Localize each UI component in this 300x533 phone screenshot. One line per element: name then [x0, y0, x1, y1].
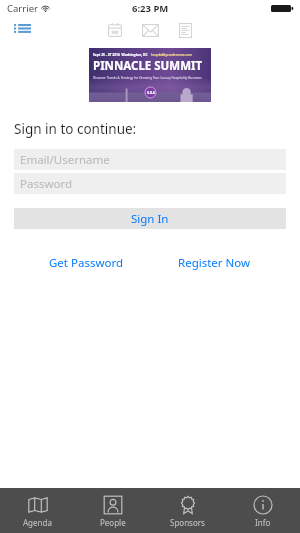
staticText: hospitalityconference.com: [151, 52, 192, 56]
button[interactable]: Pinnacle Summit 2016 banner: [89, 48, 211, 102]
button[interactable]: Email/Username: [14, 149, 286, 170]
staticText: Sign In: [131, 211, 169, 227]
staticText: Sign in to continue:: [14, 120, 137, 138]
button[interactable]: Sponsors: [150, 488, 225, 533]
button[interactable]: Calendar: [105, 20, 125, 40]
staticText: Carrier: [7, 2, 38, 15]
staticText: Get Password: [49, 255, 124, 271]
button[interactable]: Register Now: [158, 254, 270, 272]
staticText: G.B.A: [147, 91, 155, 95]
button[interactable]: Get Password: [30, 254, 142, 272]
staticText: Password: [20, 176, 73, 192]
staticText: 6:23 PM: [132, 2, 169, 15]
staticText: Register Now: [178, 255, 251, 271]
button[interactable]: Password: [14, 173, 286, 194]
button[interactable]: Info: [225, 488, 300, 533]
staticText: People: [100, 517, 126, 528]
staticText: Sept 25 - 27 2016 Washington, DC: [93, 52, 148, 56]
button[interactable]: Notes: [175, 20, 195, 40]
staticText: Sponsors: [170, 517, 205, 528]
staticText: Info: [255, 517, 271, 528]
button[interactable]: Menu: [9, 19, 35, 41]
staticText: Discover Trends & Strategy for Growing Y…: [93, 76, 202, 80]
button[interactable]: Mail: [139, 19, 161, 41]
button[interactable]: Sign In: [14, 208, 286, 229]
staticText: Agenda: [23, 517, 52, 528]
button[interactable]: People: [75, 488, 150, 533]
staticText: PINNACLE SUMMIT 2016: [93, 58, 207, 74]
staticText: Email/Username: [20, 152, 110, 168]
button[interactable]: Agenda: [0, 488, 75, 533]
